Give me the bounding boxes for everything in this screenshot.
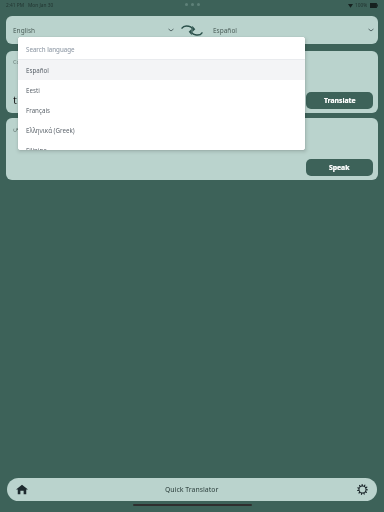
staticText: 100% bbox=[355, 2, 368, 9]
button[interactable]: Settings bbox=[353, 480, 372, 499]
staticText: English bbox=[13, 26, 36, 35]
staticText: Copy bbox=[13, 58, 26, 65]
button[interactable]: Translate bbox=[306, 92, 373, 109]
button[interactable]: Español bbox=[206, 16, 378, 44]
staticText: Español bbox=[213, 26, 237, 35]
staticText: Search language bbox=[26, 45, 75, 53]
staticText: Français bbox=[26, 106, 50, 114]
button[interactable]: Home bbox=[12, 480, 31, 499]
button[interactable]: Español bbox=[18, 60, 305, 80]
staticText: Filipino bbox=[26, 146, 47, 150]
staticText: Quick Translator bbox=[165, 485, 219, 494]
button[interactable]: Speak bbox=[306, 159, 373, 176]
staticText: Eesti bbox=[26, 86, 40, 94]
staticText: Translate bbox=[324, 96, 356, 105]
staticText: Español bbox=[26, 66, 49, 74]
button[interactable]: English bbox=[6, 16, 178, 44]
button[interactable]: Search language bbox=[18, 37, 305, 60]
staticText: Speak bbox=[329, 163, 350, 172]
staticText: Ελληνικά (Greek) bbox=[26, 126, 75, 134]
staticText: Mon Jan 30 bbox=[28, 2, 54, 9]
button[interactable]: Eesti bbox=[18, 80, 305, 100]
staticText: 2:41 PM bbox=[6, 2, 25, 9]
button[interactable]: Swap languages bbox=[178, 16, 206, 44]
staticText: the bbox=[13, 92, 30, 107]
staticText: نص bbox=[13, 124, 23, 132]
button[interactable]: Français bbox=[18, 100, 305, 120]
button[interactable]: Ελληνικά (Greek) bbox=[18, 120, 305, 140]
button[interactable]: Filipino bbox=[18, 140, 305, 150]
